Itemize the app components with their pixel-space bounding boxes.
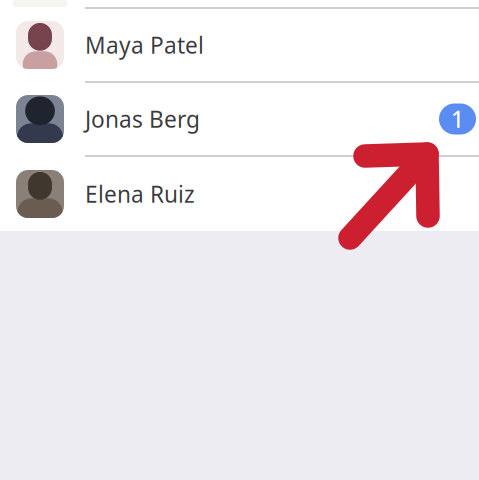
- staticText: Elena Ruiz: [85, 179, 195, 209]
- button[interactable]: Jonas Berg: [0, 83, 479, 155]
- button[interactable]: Elena Ruiz: [0, 157, 479, 231]
- button[interactable]: Maya Patel: [0, 9, 479, 81]
- staticText: Maya Patel: [85, 30, 204, 60]
- staticText: 1: [451, 104, 464, 134]
- staticText: Jonas Berg: [85, 104, 200, 134]
